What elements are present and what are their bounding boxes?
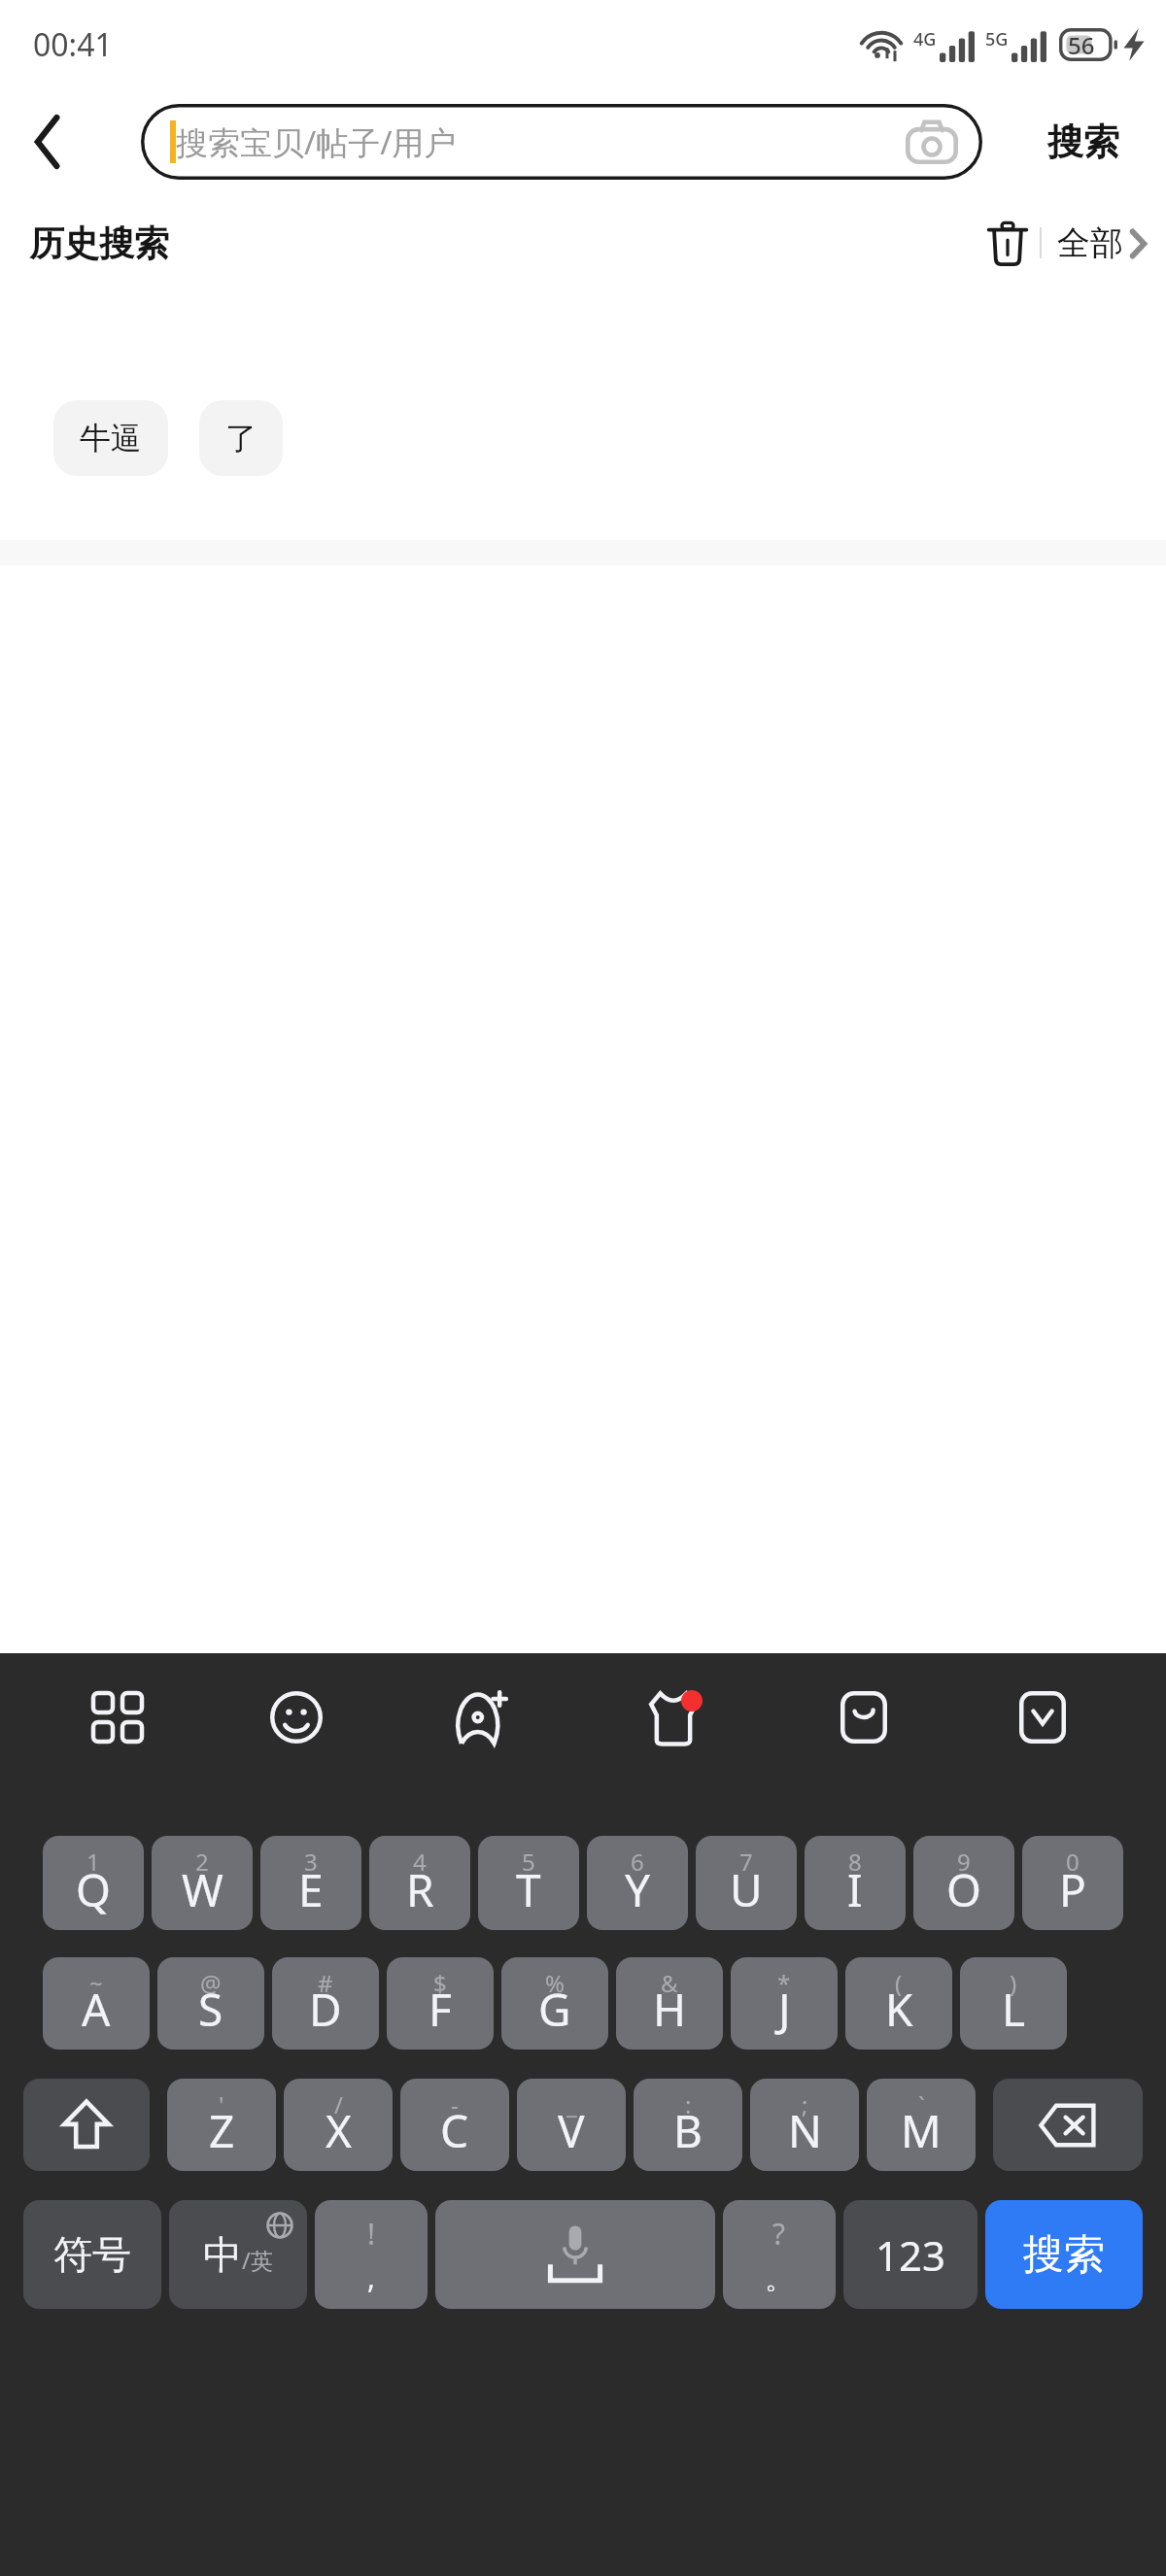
button[interactable]: _ <box>517 2079 626 2171</box>
staticText: ? <box>772 2214 786 2254</box>
button[interactable]: ? <box>723 2200 836 2309</box>
staticText: 中 <box>203 2230 242 2279</box>
button[interactable]: 搜索 <box>1011 103 1156 181</box>
staticText: 4G <box>913 27 937 51</box>
staticText: 搜索 <box>1023 2229 1105 2281</box>
staticText: ) <box>1010 1967 1017 1999</box>
staticText: 9 <box>957 1846 971 1878</box>
staticText: 2 <box>195 1846 209 1878</box>
button[interactable]: Stickers <box>435 1673 525 1762</box>
staticText: 历史搜索 <box>29 221 169 265</box>
staticText: V <box>558 2100 585 2161</box>
staticText: 5 <box>522 1846 535 1878</box>
button[interactable]: 牛逼 <box>53 400 168 476</box>
button[interactable]: Keyboard layouts <box>73 1673 162 1762</box>
staticText: * <box>777 1967 791 1999</box>
button[interactable]: Backspace <box>993 2079 1143 2171</box>
staticText: ; <box>802 2088 808 2120</box>
button[interactable]: 符号 <box>23 2200 161 2309</box>
button[interactable]: - <box>400 2079 509 2171</box>
button[interactable]: 9 <box>913 1836 1014 1930</box>
staticText: J <box>778 1979 791 2040</box>
staticText: 。 <box>765 2260 794 2297</box>
button[interactable]: ~ <box>43 1957 150 2050</box>
staticText: K <box>885 1979 913 2040</box>
staticText: 3 <box>304 1846 318 1878</box>
button[interactable]: & <box>616 1957 723 2050</box>
button[interactable]: 0 <box>1022 1836 1123 1930</box>
button[interactable]: $ <box>387 1957 494 2050</box>
button[interactable]: Clothing stickers <box>629 1673 718 1762</box>
button[interactable]: # <box>272 1957 379 2050</box>
staticText: D <box>309 1979 342 2040</box>
staticText: 8 <box>848 1846 862 1878</box>
staticText: 符号 <box>53 2230 131 2279</box>
staticText: 7 <box>739 1846 753 1878</box>
staticText: R <box>406 1859 434 1920</box>
button[interactable]: Search by image <box>903 113 961 171</box>
staticText: A <box>82 1979 111 2040</box>
button[interactable]: : <box>634 2079 742 2171</box>
button[interactable]: 3 <box>260 1836 361 1930</box>
button[interactable]: 123 <box>843 2200 977 2309</box>
staticText: # <box>318 1967 333 1999</box>
button[interactable]: 搜索宝贝/帖子/用户 <box>141 104 982 180</box>
button[interactable]: ` <box>867 2079 976 2171</box>
staticText: ~ <box>89 1967 103 1999</box>
button[interactable]: Back <box>0 89 97 194</box>
staticText: 牛逼 <box>80 419 142 458</box>
button[interactable]: 1 <box>43 1836 144 1930</box>
staticText: P <box>1059 1859 1086 1920</box>
button[interactable]: 7 <box>696 1836 797 1930</box>
button[interactable]: 8 <box>805 1836 906 1930</box>
button[interactable]: 4 <box>369 1836 470 1930</box>
button[interactable]: 中 <box>169 2200 307 2309</box>
button[interactable]: 搜索 <box>985 2200 1143 2309</box>
button[interactable]: @ <box>157 1957 264 2050</box>
button[interactable]: / <box>284 2079 393 2171</box>
staticText: 了 <box>225 419 257 458</box>
button[interactable]: 5 <box>478 1836 579 1930</box>
button[interactable]: * <box>731 1957 838 2050</box>
staticText: @ <box>200 1967 222 1999</box>
staticText: Q <box>76 1859 111 1920</box>
staticText: M <box>901 2100 942 2161</box>
staticText: F <box>429 1979 452 2040</box>
staticText: : <box>685 2088 692 2120</box>
staticText: $ <box>433 1967 447 1999</box>
button[interactable]: % <box>501 1957 608 2050</box>
button[interactable]: 6 <box>587 1836 688 1930</box>
button[interactable]: Shift <box>23 2079 150 2171</box>
button[interactable]: 了 <box>199 400 283 476</box>
button[interactable]: ; <box>750 2079 859 2171</box>
button[interactable]: ' <box>167 2079 276 2171</box>
button[interactable]: Emoji <box>252 1673 341 1762</box>
button[interactable]: ) <box>960 1957 1067 2050</box>
staticText: Y <box>625 1859 651 1920</box>
staticText: U <box>730 1859 763 1920</box>
staticText: / <box>334 2088 343 2120</box>
staticText: 全部 <box>1057 222 1123 264</box>
button[interactable]: ( <box>845 1957 952 2050</box>
button[interactable]: 2 <box>152 1836 253 1930</box>
button[interactable]: ! <box>315 2200 428 2309</box>
staticText: ' <box>219 2088 224 2120</box>
staticText: 00:41 <box>33 23 113 66</box>
button[interactable]: 全部 <box>1057 222 1147 264</box>
staticText: 123 <box>875 2227 946 2283</box>
button[interactable]: Clipboard <box>819 1673 909 1762</box>
staticText: X <box>326 2100 352 2161</box>
staticText: 搜索 <box>1047 119 1119 165</box>
staticText: C <box>440 2100 469 2161</box>
button[interactable]: Hide keyboard <box>998 1673 1087 1762</box>
staticText: H <box>653 1979 687 2040</box>
staticText: , <box>367 2257 376 2297</box>
staticText: ` <box>918 2088 925 2120</box>
staticText: O <box>946 1859 981 1920</box>
button[interactable]: Space <box>435 2200 715 2309</box>
staticText: 1 <box>86 1846 100 1878</box>
staticText: T <box>516 1859 541 1920</box>
button[interactable]: Clear search history <box>976 211 1040 275</box>
staticText: _ <box>566 2088 577 2120</box>
staticText: /英 <box>242 2245 273 2276</box>
